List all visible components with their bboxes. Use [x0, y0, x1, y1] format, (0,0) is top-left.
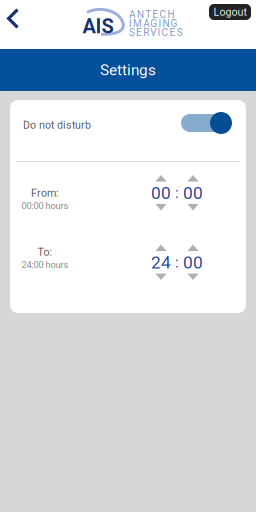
staticText: Logout [213, 6, 246, 18]
staticText: 00 [183, 252, 203, 273]
button[interactable]: Increase [151, 175, 171, 182]
button[interactable]: Decrease [183, 204, 203, 211]
staticText: Settings [100, 61, 156, 79]
staticText: ANTECH [129, 9, 174, 20]
button[interactable]: Increase [151, 244, 171, 251]
staticText: 00 [151, 183, 171, 203]
staticText: 00 [183, 183, 203, 203]
staticText: 24:00 hours [21, 259, 68, 270]
button[interactable]: Do not disturb [181, 111, 232, 135]
staticText: From: [31, 187, 59, 199]
staticText: To: [37, 246, 52, 258]
button[interactable]: Logout [209, 4, 251, 20]
button[interactable]: Increase [183, 175, 203, 182]
button[interactable]: Decrease [151, 273, 171, 280]
staticText: : [175, 254, 179, 271]
staticText: 24 [151, 252, 171, 273]
button[interactable]: Decrease [183, 273, 203, 280]
staticText: 00:00 hours [21, 200, 68, 211]
staticText: SERVICES [129, 27, 183, 38]
staticText: Do not disturb [23, 119, 91, 131]
button[interactable]: Back [0, 0, 27, 43]
button[interactable]: Increase [183, 244, 203, 251]
button[interactable]: Decrease [151, 204, 171, 211]
staticText: : [175, 184, 179, 202]
staticText: AIS [82, 15, 113, 38]
staticText: IMAGING [129, 18, 178, 29]
